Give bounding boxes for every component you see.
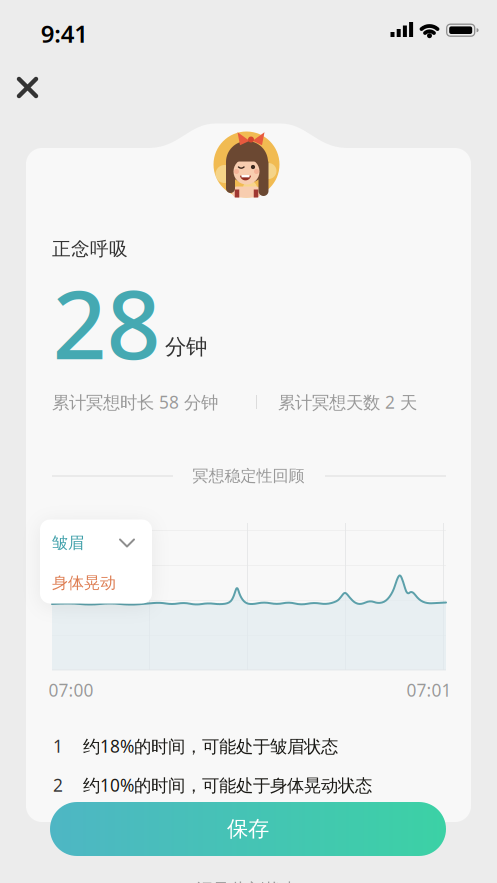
button[interactable]: 皱眉 [52, 531, 136, 555]
staticText: 1 [53, 734, 63, 757]
staticText: 皱眉 [52, 533, 84, 553]
staticText: 28 [52, 260, 160, 385]
button[interactable]: 身体晃动 [52, 571, 136, 595]
staticText: 保存 [227, 816, 269, 842]
staticText: 冥想稳定性回顾 [192, 466, 304, 486]
staticText: 分钟 [165, 334, 207, 360]
staticText: 07:00 [48, 678, 93, 701]
button[interactable] [11, 71, 43, 103]
staticText: 累计冥想时长 58 分钟 [52, 390, 218, 413]
staticText: 正念呼吸 [52, 237, 128, 260]
staticText: 07:01 [406, 678, 451, 701]
staticText: 约18%的时间，可能处于皱眉状态 [83, 734, 338, 757]
staticText: 9:41 [41, 18, 88, 49]
staticText: 2 [53, 773, 63, 796]
staticText: 累计冥想天数 2 天 [278, 390, 417, 413]
staticText: 约10%的时间，可能处于身体晃动状态 [83, 773, 372, 796]
button[interactable]: 保存 [50, 802, 446, 856]
staticText: 记录此刻状态 [196, 879, 298, 883]
staticText: 身体晃动 [52, 573, 116, 593]
